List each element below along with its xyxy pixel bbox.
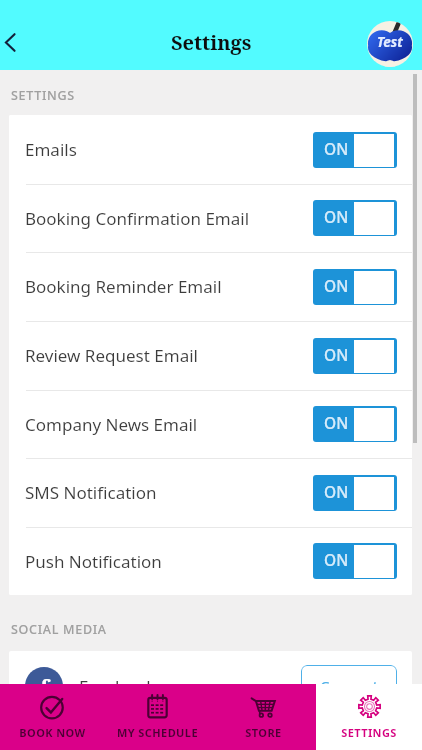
button[interactable]: Toggle on [313,475,397,511]
staticText: ON [324,549,349,570]
button[interactable]: f [9,651,412,684]
staticText: ON [324,344,349,365]
staticText: SOCIAL MEDIA [11,621,107,638]
button[interactable]: Company News Email [9,390,412,458]
button[interactable]: Toggle on [313,132,397,168]
staticText: MY SCHEDULE [117,725,198,740]
button[interactable]: Toggle on [313,406,397,442]
staticText: Connect [320,676,379,684]
staticText: Booking Reminder Email [25,275,313,298]
staticText: ON [324,138,349,159]
button[interactable]: SMS Notification [9,458,412,527]
staticText: Booking Confirmation Email [25,207,313,230]
button[interactable]: STORE [210,684,316,750]
staticText: Test [377,33,403,51]
button[interactable]: Booking Reminder Email [9,252,412,321]
staticText: BOOK NOW [19,725,86,740]
staticText: Facebook [79,675,301,684]
staticText: Push Notification [25,550,313,573]
button[interactable]: Booking Confirmation Email [9,184,412,252]
button[interactable]: Toggle on [313,543,397,579]
button[interactable]: BOOK NOW [0,684,105,750]
staticText: SETTINGS [11,87,75,104]
staticText: Review Request Email [25,344,313,367]
staticText: SETTINGS [341,725,397,740]
button[interactable]: Back [0,20,32,64]
staticText: Settings [171,29,252,56]
button[interactable]: Toggle on [313,269,397,305]
button[interactable]: Connect [301,665,397,684]
staticText: ON [324,206,349,227]
staticText: ON [324,275,349,296]
button[interactable]: Review Request Email [9,321,412,390]
button[interactable]: Toggle on [313,338,397,374]
staticText: ON [324,481,349,502]
staticText: ON [324,412,349,433]
button[interactable]: Toggle on [313,200,397,236]
button[interactable]: Profile [367,21,413,67]
button[interactable]: SETTINGS [316,684,422,750]
button[interactable]: MY SCHEDULE [105,684,210,750]
staticText: STORE [245,725,282,740]
staticText: Emails [25,138,313,161]
button[interactable]: Push Notification [9,527,412,595]
staticText: Company News Email [25,413,313,436]
button[interactable]: Emails [9,115,412,184]
staticText: SMS Notification [25,481,313,504]
staticText: f [40,672,49,684]
